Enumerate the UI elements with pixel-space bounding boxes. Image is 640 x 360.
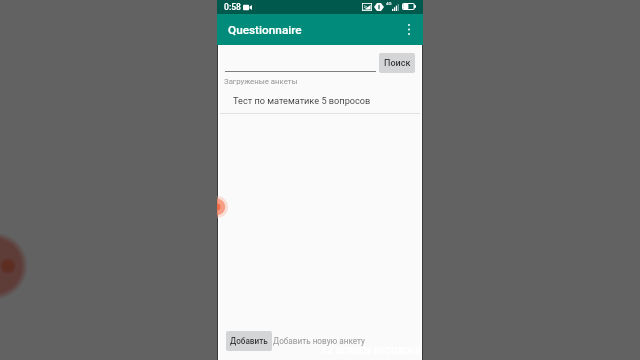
staticText: Добавить новую анкету [273, 336, 365, 346]
staticText: Загруженые анкеты [224, 77, 298, 86]
staticText: AZ SCREEN RECORDER [321, 345, 422, 356]
button[interactable]: Поиск [379, 53, 415, 73]
button[interactable]: More options [398, 14, 420, 45]
button[interactable]: Тест по математике 5 вопросов [217, 92, 423, 113]
staticText: Questionnaire [228, 23, 302, 37]
staticText: Добавить [230, 336, 268, 346]
button[interactable]: Добавить [226, 331, 272, 351]
staticText: Тест по математике 5 вопросов [233, 95, 371, 106]
staticText: 4G [386, 1, 392, 6]
staticText: Поиск [384, 58, 411, 69]
staticText: 0:58 [224, 2, 241, 12]
